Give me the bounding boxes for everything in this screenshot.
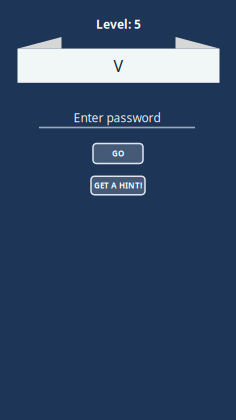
staticText: GO: [112, 148, 124, 159]
button[interactable]: GET A HINT!: [91, 176, 145, 195]
staticText: V: [113, 55, 123, 76]
staticText: Enter password: [73, 110, 160, 126]
button[interactable]: Enter password: [39, 111, 195, 128]
staticText: GET A HINT!: [94, 180, 142, 191]
staticText: Level: 5: [96, 16, 141, 32]
button[interactable]: GO: [93, 143, 143, 163]
